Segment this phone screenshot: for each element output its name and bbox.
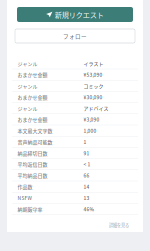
staticText: ¥3,090 <box>84 116 100 123</box>
staticText: 本文最大文字数 <box>18 127 53 134</box>
staticText: 詳細を見る <box>109 222 129 228</box>
staticText: 14 <box>84 183 90 190</box>
staticText: 1 <box>84 138 87 145</box>
staticText: イラスト <box>84 60 104 67</box>
staticText: 91 <box>84 149 90 156</box>
staticText: 納品締切日数 <box>18 149 48 156</box>
staticText: ジャンル <box>18 105 38 112</box>
staticText: アドバイス <box>84 105 109 112</box>
staticText: 46% <box>84 205 95 212</box>
staticText: < 1 <box>84 161 91 168</box>
staticText: 音声納品可能数 <box>18 138 53 145</box>
staticText: 平均納品日数 <box>18 172 48 179</box>
staticText: フォロー <box>63 32 87 40</box>
staticText: おまかせ金額 <box>18 93 48 100</box>
staticText: ¥53,090 <box>84 71 103 78</box>
staticText: 平均返信日数 <box>18 161 48 168</box>
staticText: ¥30,090 <box>84 93 103 100</box>
staticText: 新規リクエスト <box>55 9 104 20</box>
staticText: おまかせ金額 <box>18 71 48 78</box>
button[interactable]: フォロー <box>15 29 135 43</box>
staticText: 作品数 <box>18 183 33 190</box>
staticText: ジャンル <box>18 60 38 67</box>
button[interactable]: 新規リクエスト <box>17 7 133 22</box>
staticText: 13 <box>84 194 90 201</box>
staticText: ジャンル <box>18 82 38 89</box>
staticText: 納期厳守率 <box>18 205 43 212</box>
staticText: 66 <box>84 172 90 179</box>
staticText: 1,000 <box>84 127 97 134</box>
staticText: おまかせ金額 <box>18 116 48 123</box>
staticText: コミック <box>84 82 104 89</box>
staticText: NSFW <box>18 194 32 201</box>
